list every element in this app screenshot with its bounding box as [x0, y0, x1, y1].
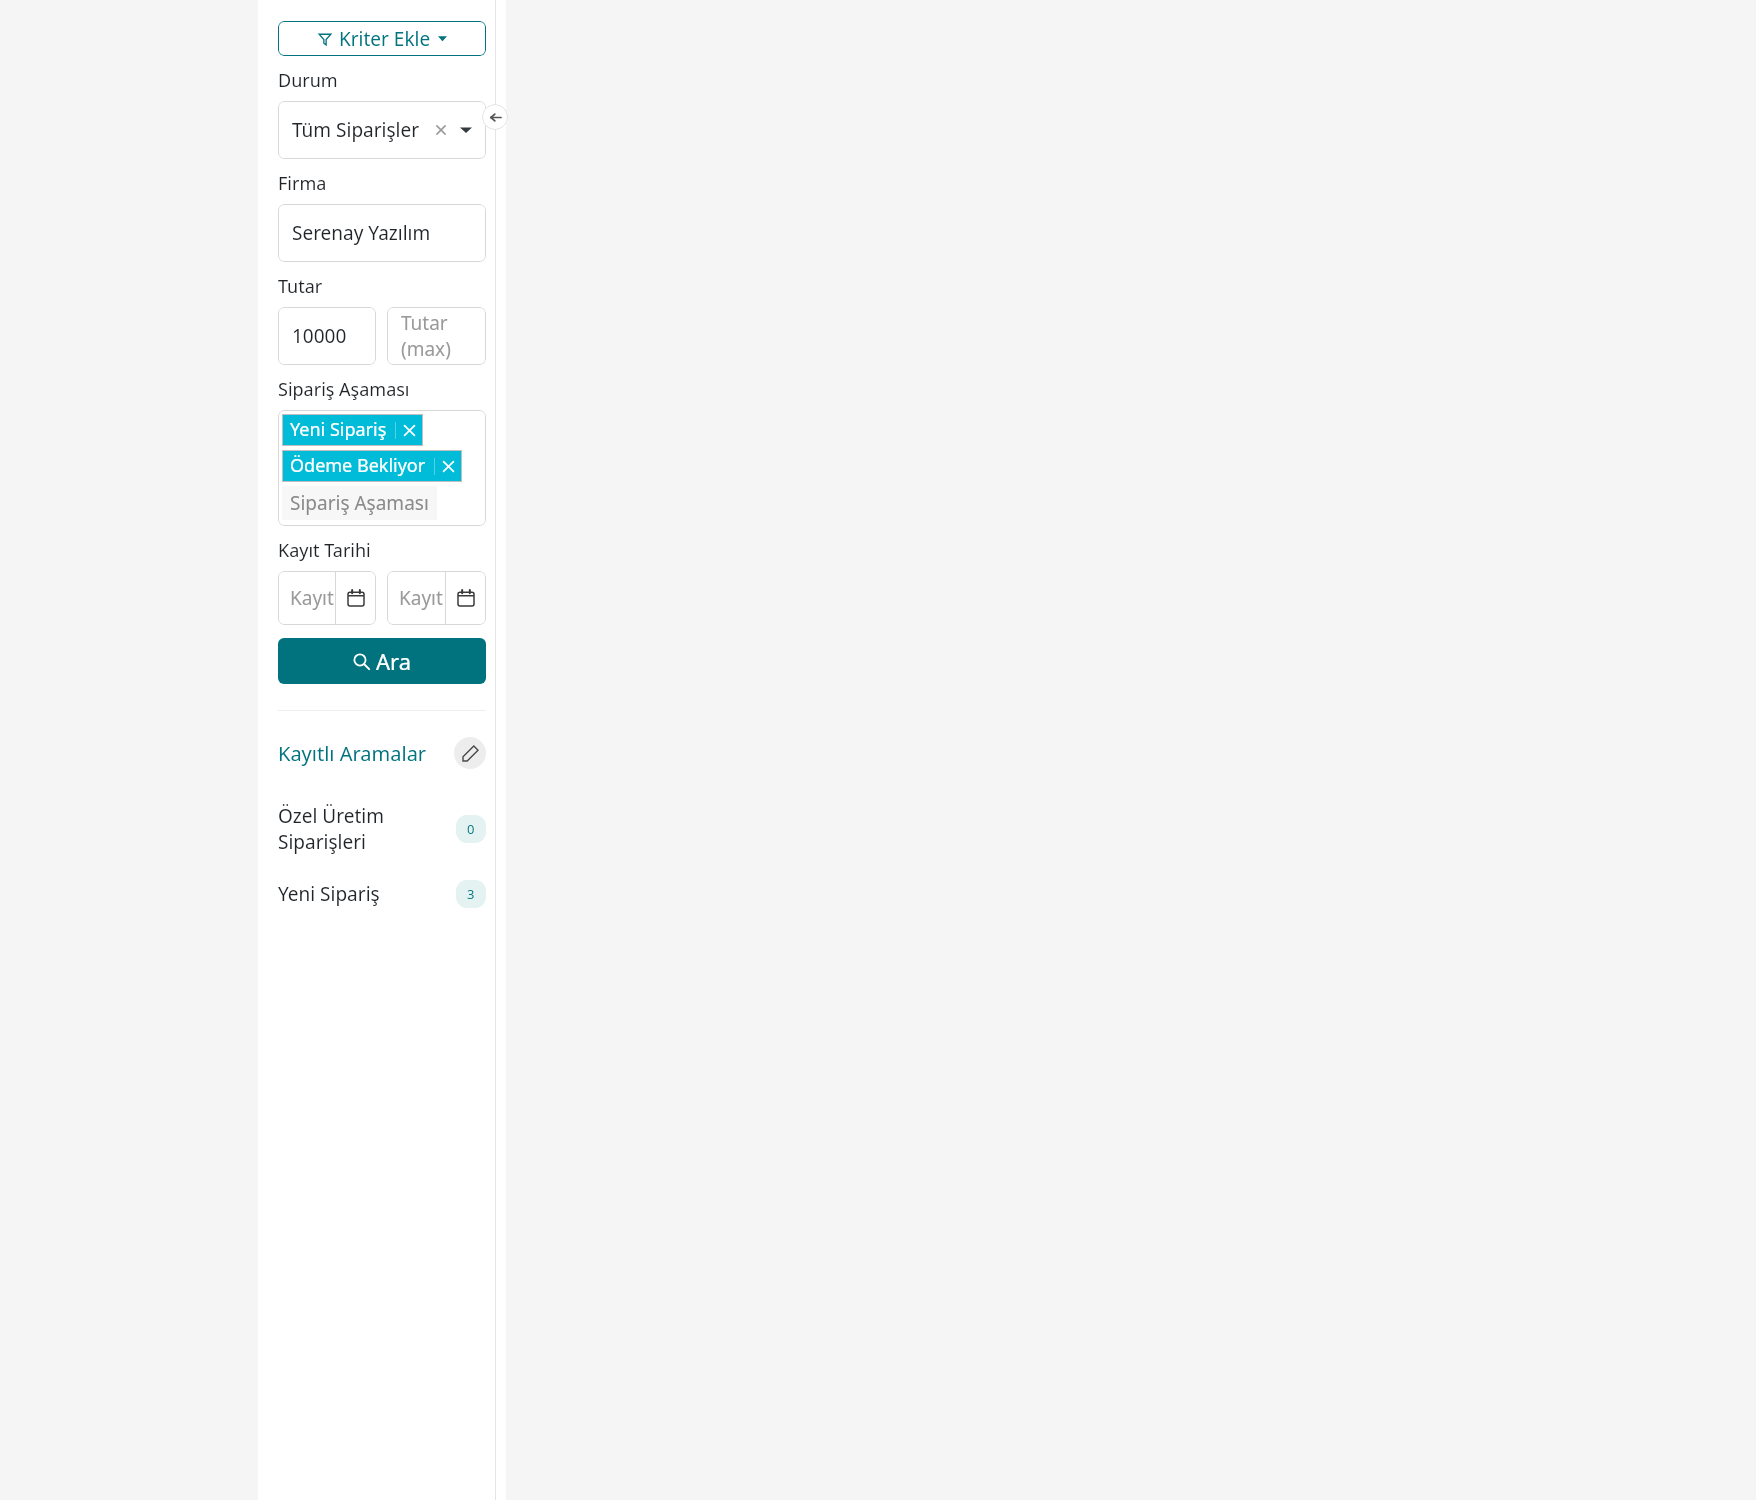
staticText: Kayıt — [399, 585, 443, 611]
staticText: Sipariş Aşaması — [290, 490, 429, 516]
button[interactable]: Tutar (max) — [387, 307, 486, 365]
staticText: Serenay Yazılım — [292, 220, 431, 246]
button[interactable]: Yeni Sipariş — [278, 880, 486, 908]
button[interactable]: Ara — [278, 638, 486, 684]
staticText: 3 — [467, 885, 475, 903]
button[interactable]: Özel Üretim Siparişleri — [278, 803, 486, 855]
button[interactable]: Tüm Siparişler — [278, 101, 486, 159]
staticText: Yeni Sipariş — [278, 881, 456, 907]
button[interactable]: Temizle — [432, 121, 450, 139]
staticText: Tüm Siparişler — [292, 117, 432, 143]
staticText: Firma — [278, 171, 327, 196]
button[interactable]: Geri — [482, 104, 508, 130]
button[interactable]: Kayıt — [387, 571, 486, 625]
staticText: Kayıt — [290, 585, 334, 611]
staticText: Tutar — [278, 274, 323, 299]
button[interactable]: Kaldır — [403, 424, 416, 437]
staticText: Durum — [278, 68, 338, 93]
button[interactable]: Kriter Ekle — [278, 21, 486, 56]
button[interactable]: Takvim — [446, 571, 486, 625]
staticText: Kayıt Tarihi — [278, 538, 371, 563]
button[interactable]: Kayıt — [278, 571, 376, 625]
staticText: 10000 — [292, 323, 347, 349]
staticText: Kayıtlı Aramalar — [278, 740, 454, 767]
button[interactable]: Ödeme Bekliyor — [282, 450, 462, 482]
staticText: Ara — [376, 646, 412, 676]
button[interactable]: Kaldır — [442, 460, 455, 473]
staticText: Sipariş Aşaması — [278, 377, 410, 402]
staticText: Tutar (max) — [401, 310, 472, 362]
button[interactable]: Serenay Yazılım — [278, 204, 486, 262]
staticText: Özel Üretim Siparişleri — [278, 803, 456, 855]
staticText: 0 — [467, 820, 475, 838]
button[interactable]: Yeni Sipariş — [282, 414, 423, 446]
button[interactable]: Düzenle — [454, 737, 486, 769]
button[interactable]: Takvim — [336, 571, 376, 625]
button[interactable]: 10000 — [278, 307, 376, 365]
staticText: Kriter Ekle — [339, 26, 431, 52]
staticText: Ödeme Bekliyor — [290, 453, 426, 478]
staticText: Yeni Sipariş — [290, 417, 387, 442]
